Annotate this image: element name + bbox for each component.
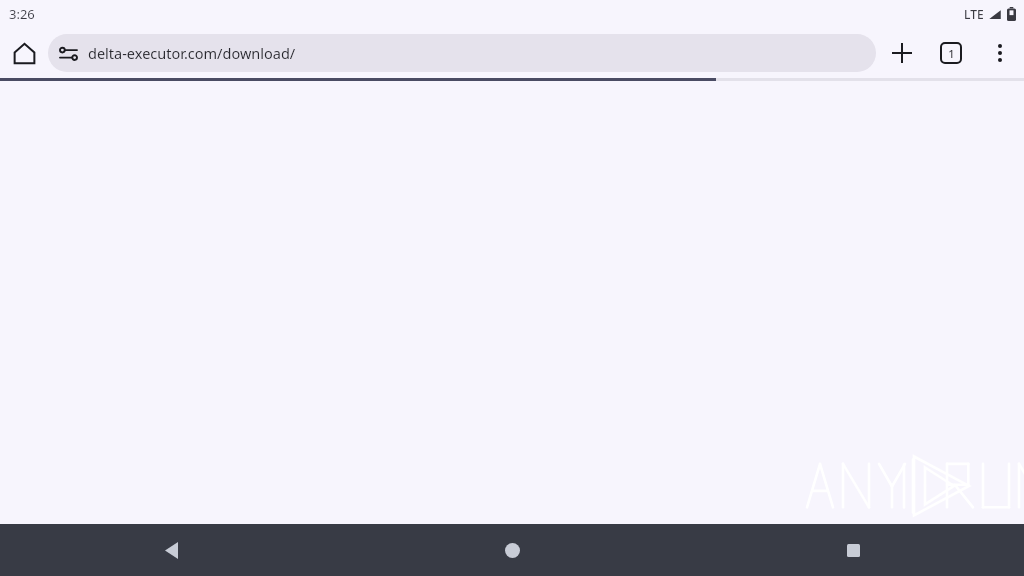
button[interactable]: Switch tabs, 1 tab open <box>929 31 973 75</box>
staticText: LTE <box>964 6 984 22</box>
staticText: 3:26 <box>9 5 35 23</box>
button[interactable]: New tab <box>880 31 924 75</box>
staticText: delta-executor.com/download/ <box>88 43 296 63</box>
staticText: 1 <box>948 46 955 61</box>
button[interactable]: Back <box>0 524 342 576</box>
button[interactable]: Recent apps <box>683 524 1024 576</box>
button[interactable]: Home <box>2 31 46 75</box>
button[interactable]: More options <box>978 31 1022 75</box>
button[interactable]: delta-executor.com/download/ <box>48 34 876 72</box>
button[interactable]: Home <box>342 524 683 576</box>
